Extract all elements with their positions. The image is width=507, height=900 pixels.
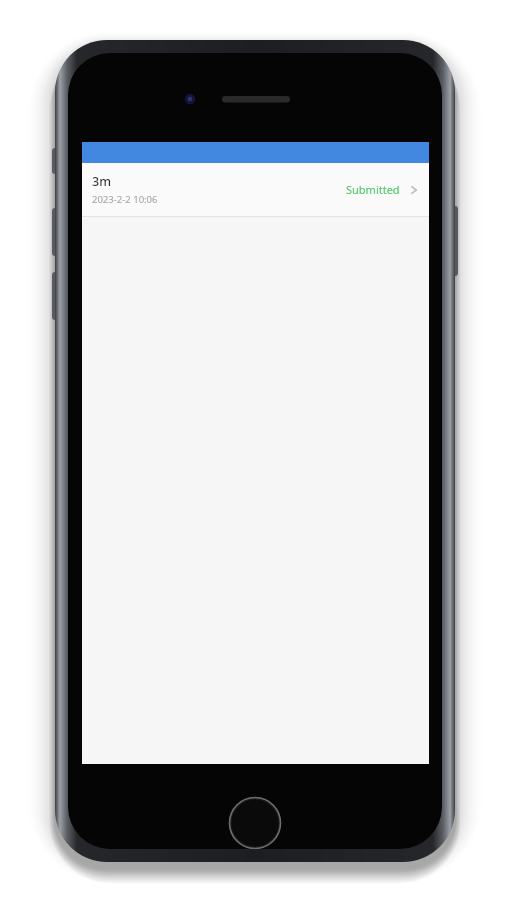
staticText: Submitted (346, 182, 400, 197)
staticText: 3m (92, 173, 111, 190)
button[interactable]: 3m (82, 163, 429, 216)
button[interactable]: Home (228, 796, 282, 849)
staticText: 2023-2-2 10:06 (92, 193, 158, 206)
other: Open details (407, 183, 421, 197)
